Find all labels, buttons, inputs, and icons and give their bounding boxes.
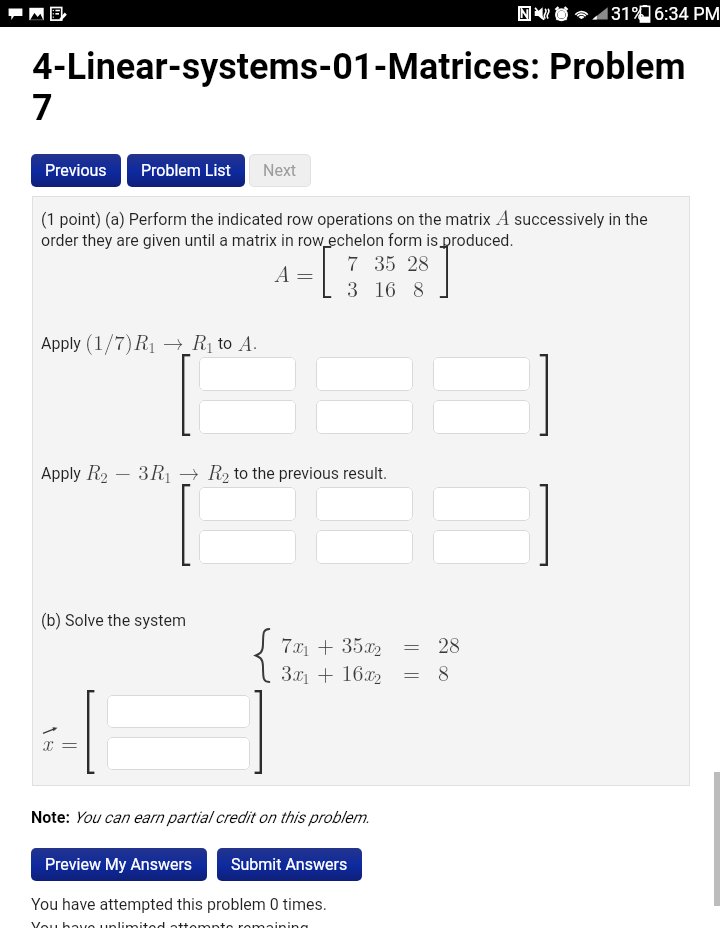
button[interactable]: Answer input — [199, 357, 296, 391]
staticText: 7 — [347, 246, 359, 272]
staticText: 8 — [413, 272, 425, 298]
staticText: 7x1 + 35x2 — [281, 628, 382, 656]
staticText: Note: You can earn partial credit on thi… — [31, 808, 371, 827]
button[interactable]: Next — [249, 154, 311, 187]
staticText: Preview My Answers — [45, 855, 193, 874]
button[interactable]: Answer input — [433, 530, 530, 564]
staticText: (b) Solve the system — [41, 611, 186, 630]
staticText: to the previous result. — [230, 464, 388, 483]
staticText: Previous — [45, 161, 107, 180]
button[interactable]: Answer input — [433, 400, 530, 434]
staticText: Problem List — [141, 161, 231, 180]
button[interactable]: Preview My Answers — [31, 848, 207, 881]
staticText: x — [42, 726, 53, 757]
other: Messages — [8, 6, 23, 21]
staticText: Apply — [41, 464, 85, 483]
staticText: 4-Linear-systems-01-Matrices: Problem 7 — [32, 46, 694, 128]
staticText: to — [214, 334, 237, 353]
button[interactable]: Answer input — [316, 530, 413, 564]
button[interactable]: Answer input — [107, 737, 250, 770]
staticText: = — [403, 656, 421, 684]
button[interactable]: Answer input — [107, 695, 250, 728]
other: Screenshot — [29, 6, 44, 21]
staticText: You have attempted this problem 0 times. — [31, 895, 327, 914]
staticText: 3 — [347, 272, 359, 298]
staticText: = — [403, 628, 421, 656]
button[interactable]: Previous — [31, 154, 121, 187]
staticText: 35 — [374, 246, 397, 272]
staticText: A — [237, 327, 253, 357]
staticText: 3x1 + 16x2 — [281, 656, 382, 684]
staticText: Submit Answers — [231, 855, 348, 874]
staticText: R2 − 3R1 → R2 — [85, 456, 230, 487]
staticText: 6:34 PM — [654, 3, 720, 24]
staticText: 8 — [438, 656, 450, 684]
staticText: 31% — [611, 3, 645, 24]
staticText: (1 point) (a) Perform the indicated row … — [41, 201, 653, 250]
button[interactable]: Problem List — [127, 154, 245, 187]
staticText: You have unlimited attempts remaining. — [31, 919, 313, 928]
button[interactable]: Answer input — [316, 357, 413, 391]
staticText: 28 — [438, 628, 461, 656]
staticText: A — [273, 256, 291, 289]
staticText: 28 — [407, 246, 430, 272]
button[interactable]: Answer input — [316, 400, 413, 434]
staticText: 16 — [374, 272, 397, 298]
button[interactable]: Answer input — [316, 487, 413, 521]
button[interactable]: Answer input — [199, 487, 296, 521]
staticText: = — [296, 256, 314, 289]
staticText: (1/7)R1 → R1 — [85, 326, 214, 357]
staticText: Apply — [41, 334, 85, 353]
button[interactable]: Answer input — [199, 530, 296, 564]
staticText: = — [61, 726, 79, 757]
other: Note — [50, 6, 65, 21]
button[interactable]: Answer input — [433, 487, 530, 521]
staticText: Next — [263, 161, 297, 180]
button[interactable]: Answer input — [433, 357, 530, 391]
button[interactable]: Answer input — [199, 400, 296, 434]
staticText: . — [253, 334, 258, 353]
button[interactable]: Submit Answers — [217, 848, 362, 881]
